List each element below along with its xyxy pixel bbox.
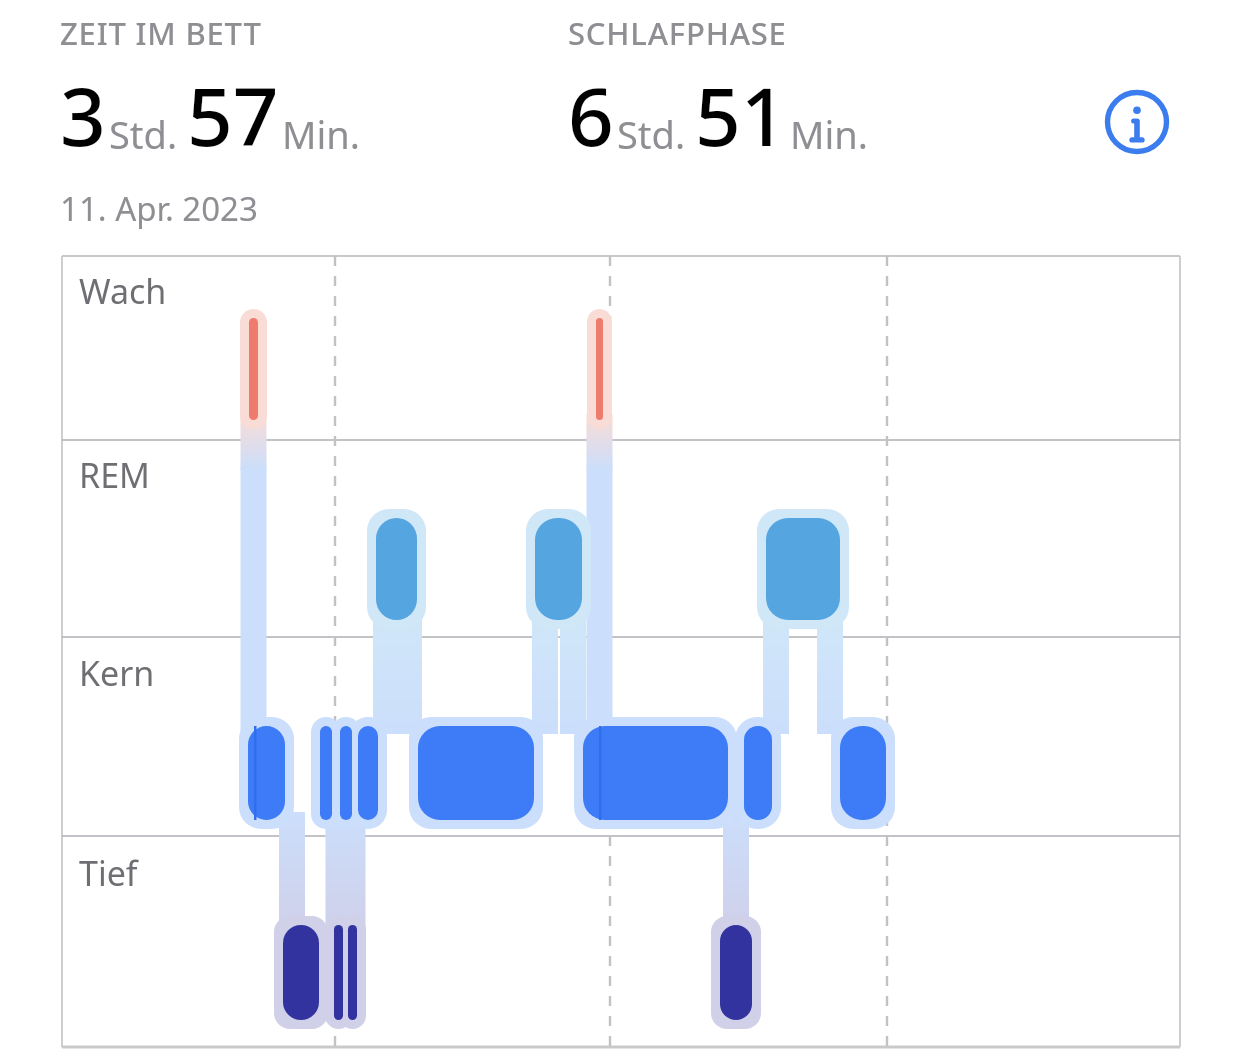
staticText: Min. [282,108,360,160]
staticText: 6 [568,60,614,169]
staticText: Tief [79,850,138,896]
staticText: Std. [617,108,686,160]
staticText: ZEIT IM BETT [60,12,262,54]
staticText: Std. [109,108,178,160]
staticText: Wach [79,268,167,314]
staticText: 57 [187,60,279,169]
staticText: SCHLAFPHASE [568,12,787,54]
staticText: REM [79,452,150,498]
staticText: 11. Apr. 2023 [60,186,258,231]
staticText: Kern [79,650,155,696]
button[interactable]: Info [1104,89,1170,155]
staticText: 3 [60,60,106,169]
staticText: 51 [695,60,787,169]
staticText: Min. [790,108,868,160]
